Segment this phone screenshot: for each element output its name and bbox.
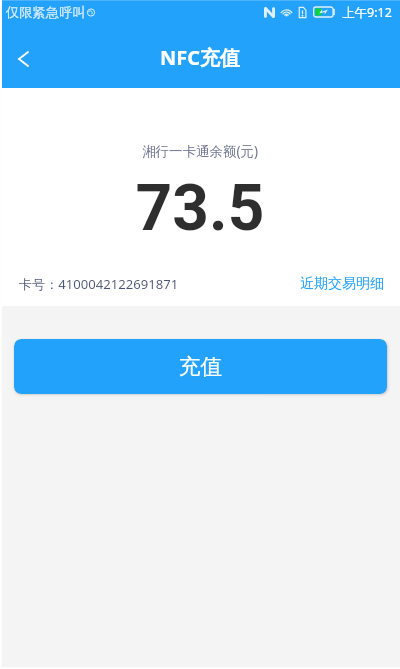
staticText: 湘行一卡通余额(元) <box>0 142 400 160</box>
button[interactable]: 近期交易明细 <box>298 271 386 297</box>
staticText: 充值 <box>179 353 223 380</box>
staticText: 上午9:12 <box>342 4 392 21</box>
staticText: 73.5 <box>0 171 400 246</box>
button[interactable]: 充值 <box>14 339 387 394</box>
staticText: 仅限紧急呼叫 <box>6 4 86 21</box>
staticText: 近期交易明细 <box>300 275 384 293</box>
button[interactable]: Back <box>0 33 46 79</box>
staticText: 卡号：4100042122691871 <box>19 275 179 293</box>
staticText: NFC充值 <box>160 44 241 71</box>
